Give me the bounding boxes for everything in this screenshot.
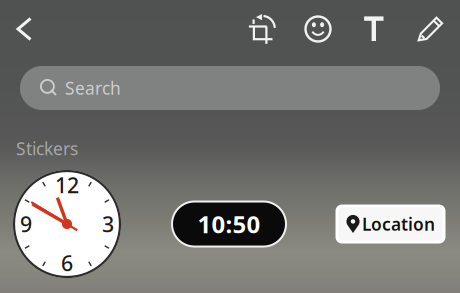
staticText: Stickers: [16, 137, 78, 160]
button[interactable]: Draw: [402, 0, 460, 58]
staticText: Location: [362, 212, 435, 235]
button[interactable]: Back: [1, 0, 47, 58]
staticText: 12: [55, 171, 79, 199]
button[interactable]: Location: [337, 206, 444, 242]
staticText: 3: [102, 210, 114, 238]
button[interactable]: Crop and rotate: [234, 0, 290, 58]
button[interactable]: Search: [20, 66, 440, 110]
button[interactable]: Clock sticker: [13, 170, 121, 278]
staticText: 6: [61, 249, 73, 277]
button[interactable]: 10:50: [172, 201, 286, 246]
staticText: 9: [20, 210, 32, 238]
staticText: 10:50: [197, 208, 260, 240]
button[interactable]: Stickers: [290, 0, 346, 58]
button[interactable]: Add text: [346, 0, 402, 58]
staticText: Search: [65, 76, 121, 99]
